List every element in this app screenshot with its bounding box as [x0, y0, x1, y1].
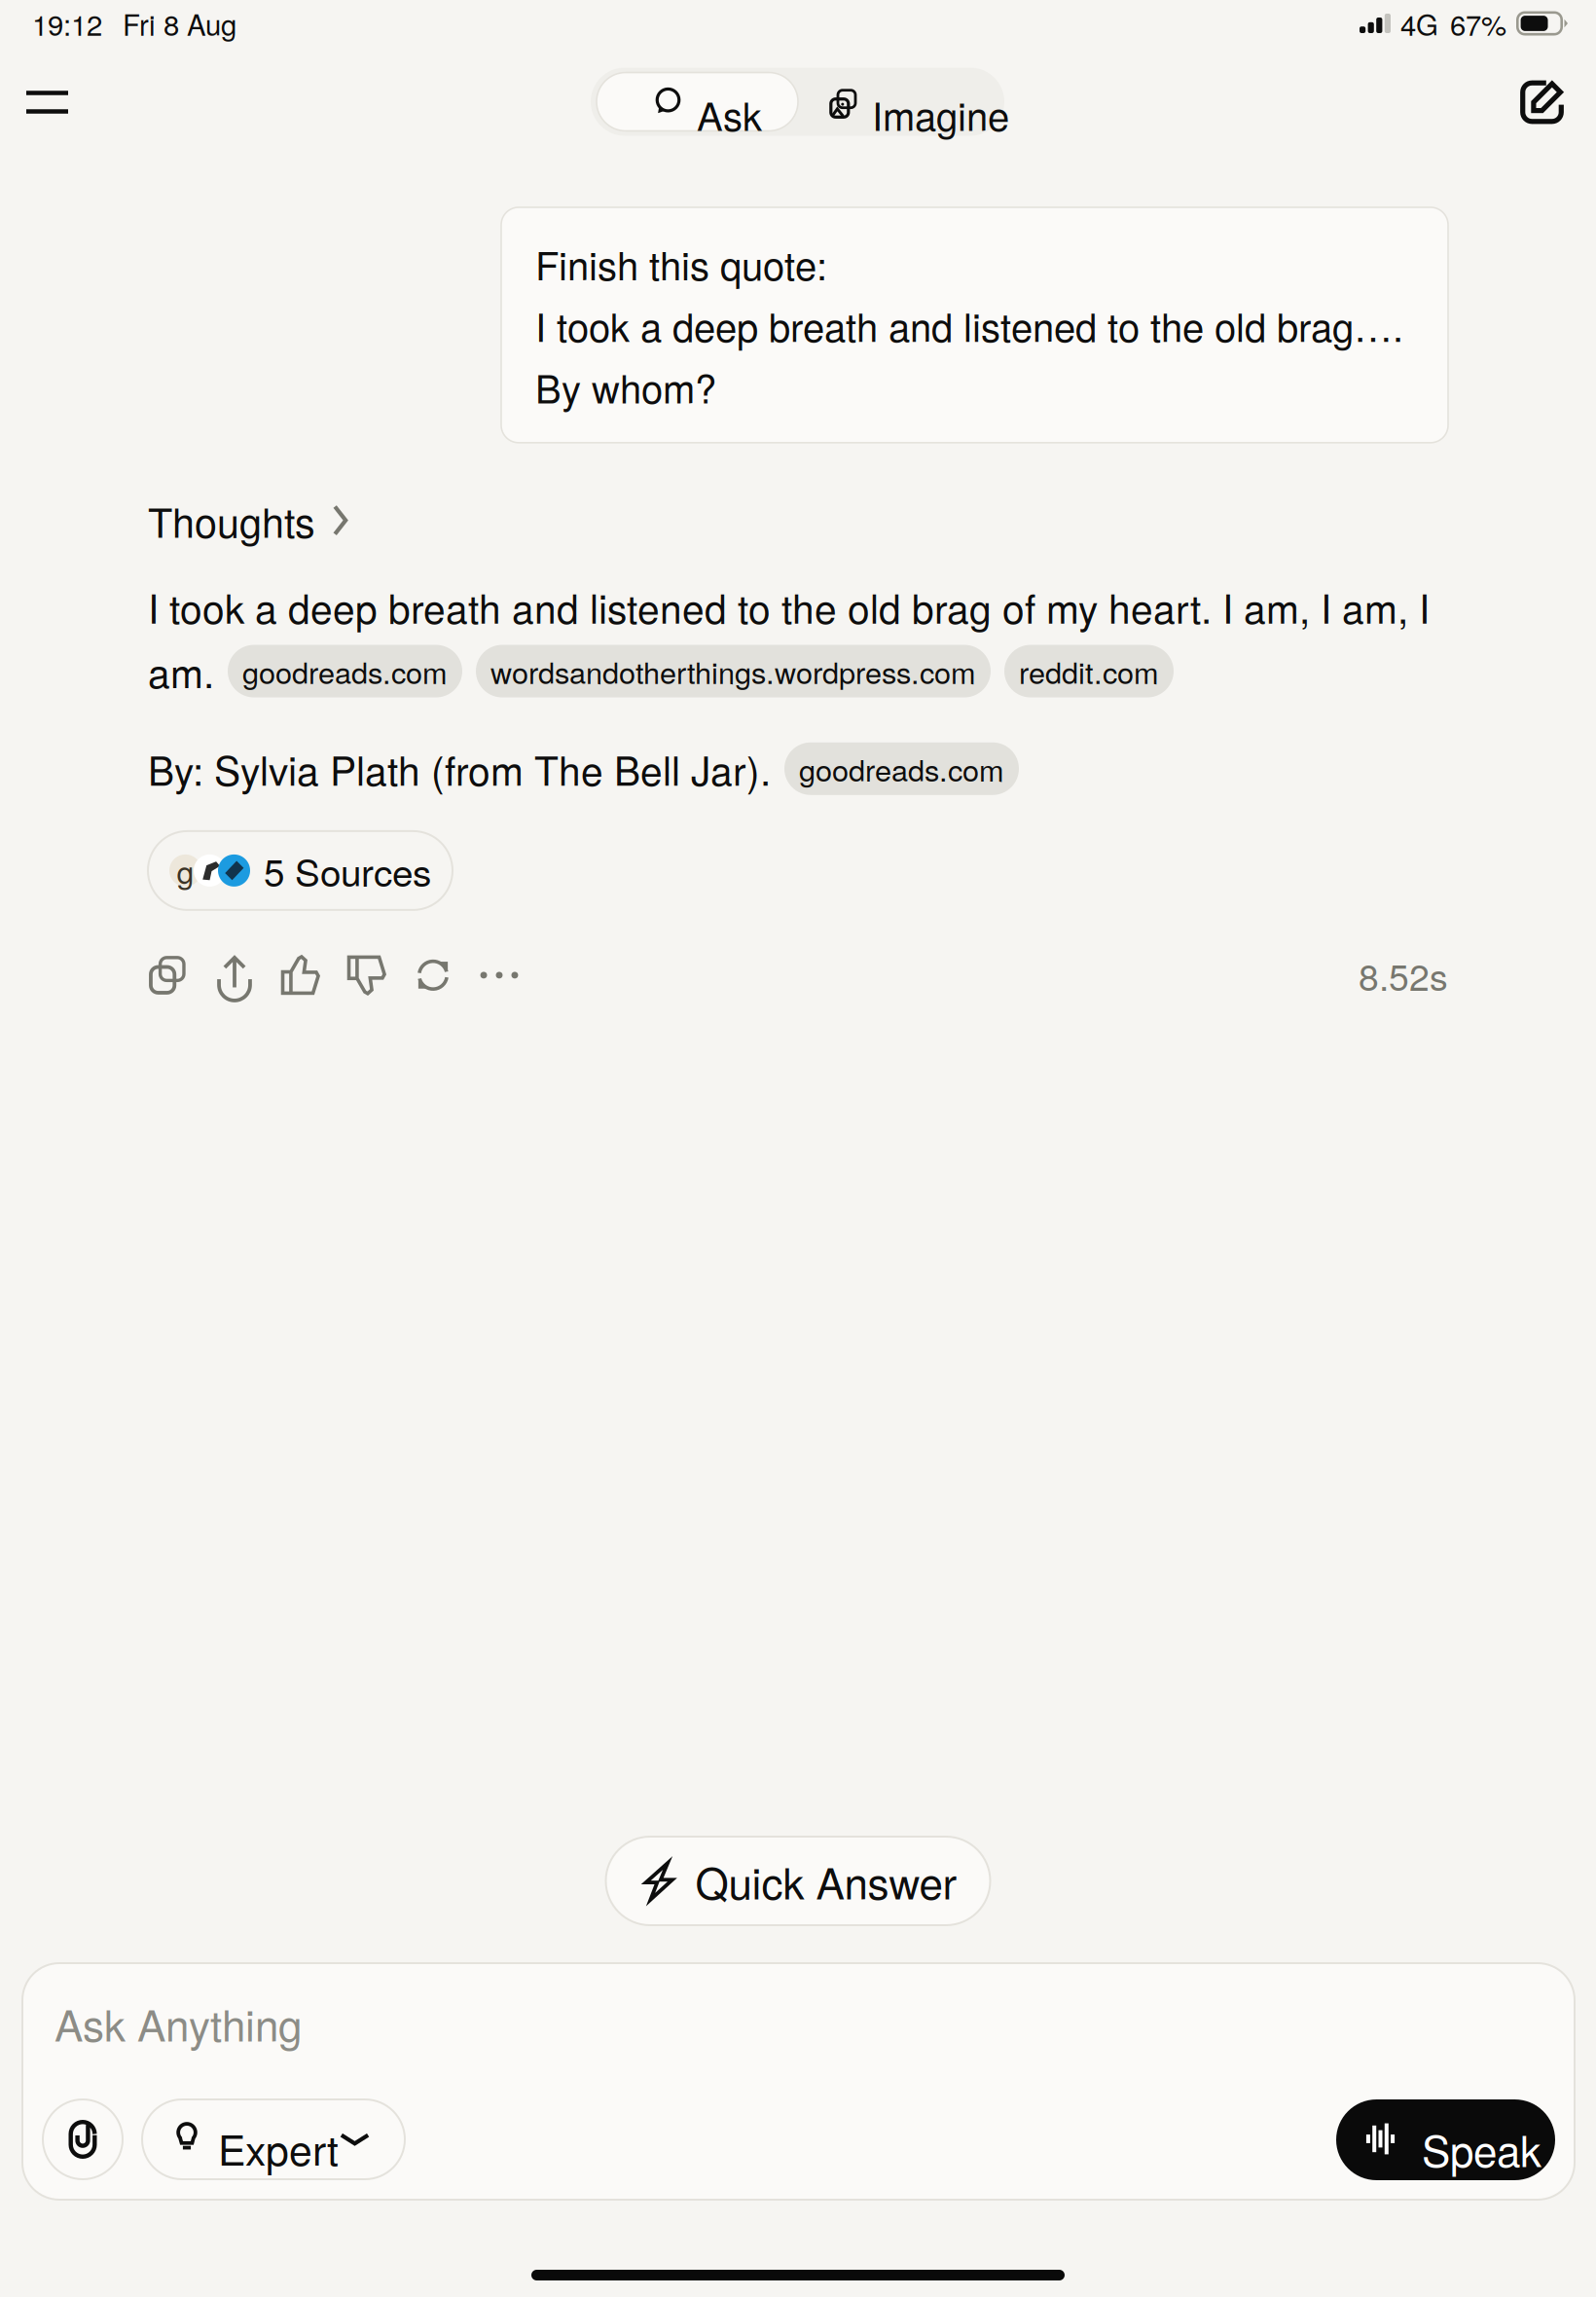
- staticText: Expert: [218, 2118, 339, 2177]
- button[interactable]: goodreads.com: [784, 742, 1019, 795]
- button[interactable]: Rewrite: [413, 955, 453, 996]
- button[interactable]: Thoughts: [148, 492, 349, 549]
- button[interactable]: reddit.com: [1004, 645, 1174, 697]
- staticText: 4G: [1400, 3, 1438, 44]
- button[interactable]: wordsandotherthings.wordpress.com: [476, 645, 991, 697]
- staticText: wordsandotherthings.wordpress.com: [490, 650, 976, 693]
- staticText: Imagine: [872, 86, 1009, 142]
- button[interactable]: Speak: [1336, 2099, 1555, 2180]
- staticText: 19:12: [32, 3, 102, 44]
- staticText: am.: [148, 643, 214, 699]
- button[interactable]: More: [479, 955, 520, 996]
- staticText: Quick Answer: [695, 1850, 957, 1912]
- button[interactable]: goodreads.com: [228, 645, 462, 697]
- staticText: Fri 8 Aug: [123, 3, 236, 44]
- staticText: Thoughts: [148, 492, 315, 549]
- button[interactable]: Attach: [43, 2099, 123, 2179]
- button[interactable]: g: [148, 831, 453, 910]
- staticText: Ask Anything: [54, 1992, 302, 2054]
- staticText: Ask: [697, 86, 762, 142]
- button[interactable]: Like: [280, 955, 321, 996]
- button[interactable]: Menu: [0, 68, 94, 137]
- staticText: I took a deep breath and listened to the…: [148, 578, 1430, 635]
- staticText: Speak: [1422, 2118, 1542, 2179]
- button[interactable]: Quick Answer: [606, 1837, 990, 1925]
- button[interactable]: Share: [214, 955, 255, 996]
- button[interactable]: New thread: [1495, 68, 1589, 137]
- button[interactable]: Copy: [148, 955, 189, 996]
- staticText: g: [177, 848, 194, 893]
- staticText: reddit.com: [1019, 650, 1159, 693]
- button[interactable]: Ask: [597, 73, 798, 131]
- staticText: 8.52s: [1359, 949, 1448, 1001]
- staticText: 5 Sources: [264, 844, 431, 897]
- staticText: 67%: [1450, 3, 1506, 44]
- button[interactable]: Expert: [142, 2099, 405, 2179]
- staticText: goodreads.com: [242, 650, 448, 693]
- staticText: By: Sylvia Plath (from The Bell Jar).: [148, 740, 771, 797]
- staticText: goodreads.com: [799, 747, 1004, 790]
- staticText: I took a deep breath and listened to the…: [535, 297, 1403, 353]
- staticText: Finish this quote:: [535, 236, 827, 291]
- button[interactable]: Dislike: [346, 955, 387, 996]
- staticText: By whom?: [535, 359, 716, 415]
- button[interactable]: Imagine: [793, 73, 999, 131]
